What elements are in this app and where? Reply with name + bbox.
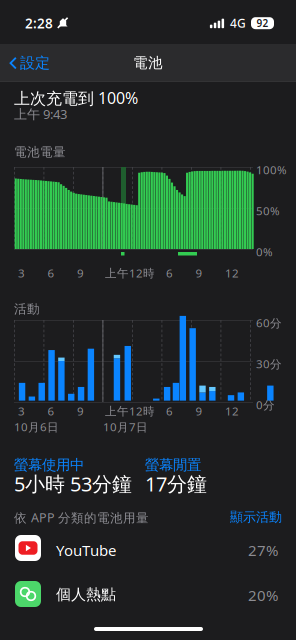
button[interactable]: 顯示活動	[226, 506, 286, 528]
staticText: 9	[77, 403, 84, 419]
button[interactable]: 設定	[0, 44, 58, 82]
staticText: 個人熱點	[56, 585, 116, 604]
staticText: 60分	[256, 315, 282, 331]
staticText: 10月6日	[14, 419, 59, 435]
staticText: 電池	[133, 54, 163, 72]
staticText: 電池電量	[14, 144, 66, 160]
staticText: 9	[195, 265, 202, 281]
staticText: 100%	[256, 162, 287, 178]
staticText: 12	[225, 403, 239, 419]
staticText: 0%	[256, 244, 273, 260]
staticText: 5小時 53分鐘	[14, 470, 132, 497]
staticText: 4G	[230, 15, 246, 31]
staticText: 3	[18, 403, 25, 419]
staticText: 上午12時	[105, 265, 155, 281]
staticText: 30分	[256, 356, 282, 372]
staticText: 上午 9:43	[14, 105, 67, 123]
staticText: 活動	[14, 301, 40, 317]
staticText: 50%	[256, 203, 280, 219]
staticText: 12	[225, 265, 239, 281]
staticText: 螢幕閒置	[145, 456, 201, 474]
staticText: 9	[195, 403, 202, 419]
staticText: 6	[166, 265, 173, 281]
staticText: YouTube	[56, 540, 116, 560]
staticText: 6	[47, 403, 54, 419]
staticText: 上次充電到 100%	[14, 87, 138, 109]
staticText: 設定	[20, 54, 50, 72]
staticText: 2:28	[25, 14, 53, 32]
staticText: 6	[166, 403, 173, 419]
staticText: 9	[77, 265, 84, 281]
button[interactable]: YouTube	[0, 525, 296, 571]
staticText: 20%	[248, 585, 278, 605]
staticText: 3	[18, 265, 25, 281]
staticText: 10月7日	[103, 419, 148, 435]
staticText: 6	[47, 265, 54, 281]
staticText: 27%	[248, 540, 278, 560]
staticText: 螢幕使用中	[14, 456, 84, 474]
staticText: 上午12時	[105, 403, 155, 419]
staticText: 依 APP 分類的電池用量	[14, 509, 149, 526]
staticText: 0分	[256, 397, 275, 413]
staticText: 17分鐘	[145, 470, 207, 497]
staticText: 92	[256, 16, 268, 30]
staticText: 顯示活動	[230, 509, 282, 525]
button[interactable]: 個人熱點	[0, 571, 296, 617]
